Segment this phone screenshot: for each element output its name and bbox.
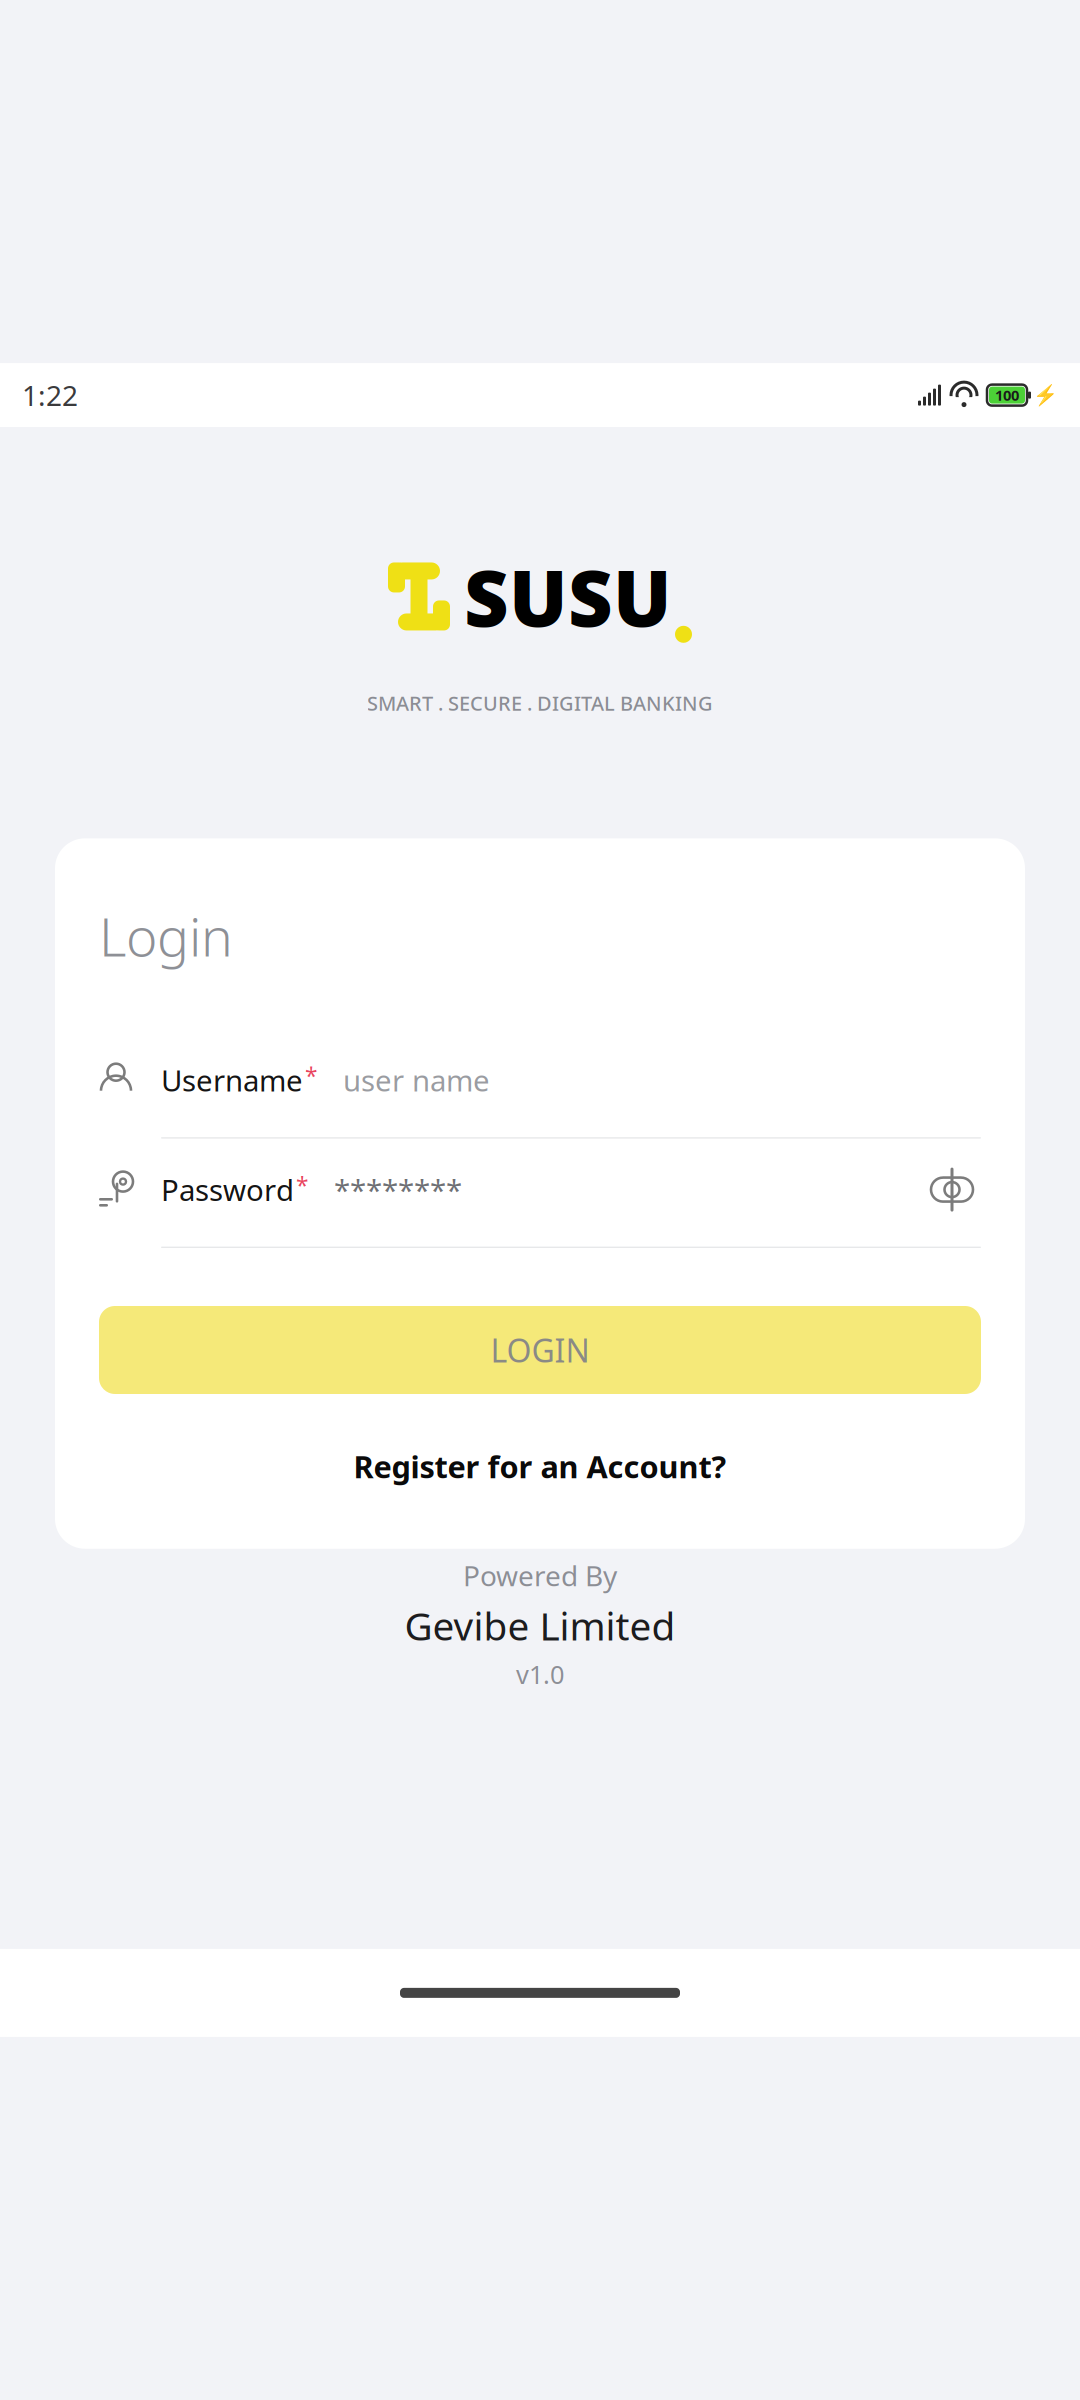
staticText: Password: [161, 1170, 294, 1209]
staticText: ********: [334, 1170, 462, 1209]
staticText: v1.0: [516, 1657, 564, 1691]
button[interactable]: Username: [99, 1049, 981, 1139]
button[interactable]: Register for an Account?: [99, 1446, 981, 1487]
staticText: Gevibe Limited: [404, 1600, 675, 1651]
staticText: Register for an Account?: [353, 1446, 726, 1487]
staticText: SUSU: [464, 545, 672, 648]
staticText: user name: [343, 1061, 490, 1100]
staticText: 100: [995, 385, 1019, 405]
staticText: SMART . SECURE . DIGITAL BANKING: [367, 690, 713, 716]
staticText: 1:22: [22, 376, 78, 414]
staticText: ⚡: [1033, 384, 1058, 407]
button[interactable]: LOGIN: [99, 1306, 981, 1394]
button[interactable]: Show password: [923, 1167, 981, 1213]
staticText: *: [305, 1061, 317, 1091]
staticText: *: [296, 1170, 308, 1200]
staticText: Username: [161, 1061, 303, 1100]
staticText: Login: [99, 900, 233, 971]
staticText: LOGIN: [490, 1329, 589, 1371]
staticText: Powered By: [463, 1557, 617, 1594]
